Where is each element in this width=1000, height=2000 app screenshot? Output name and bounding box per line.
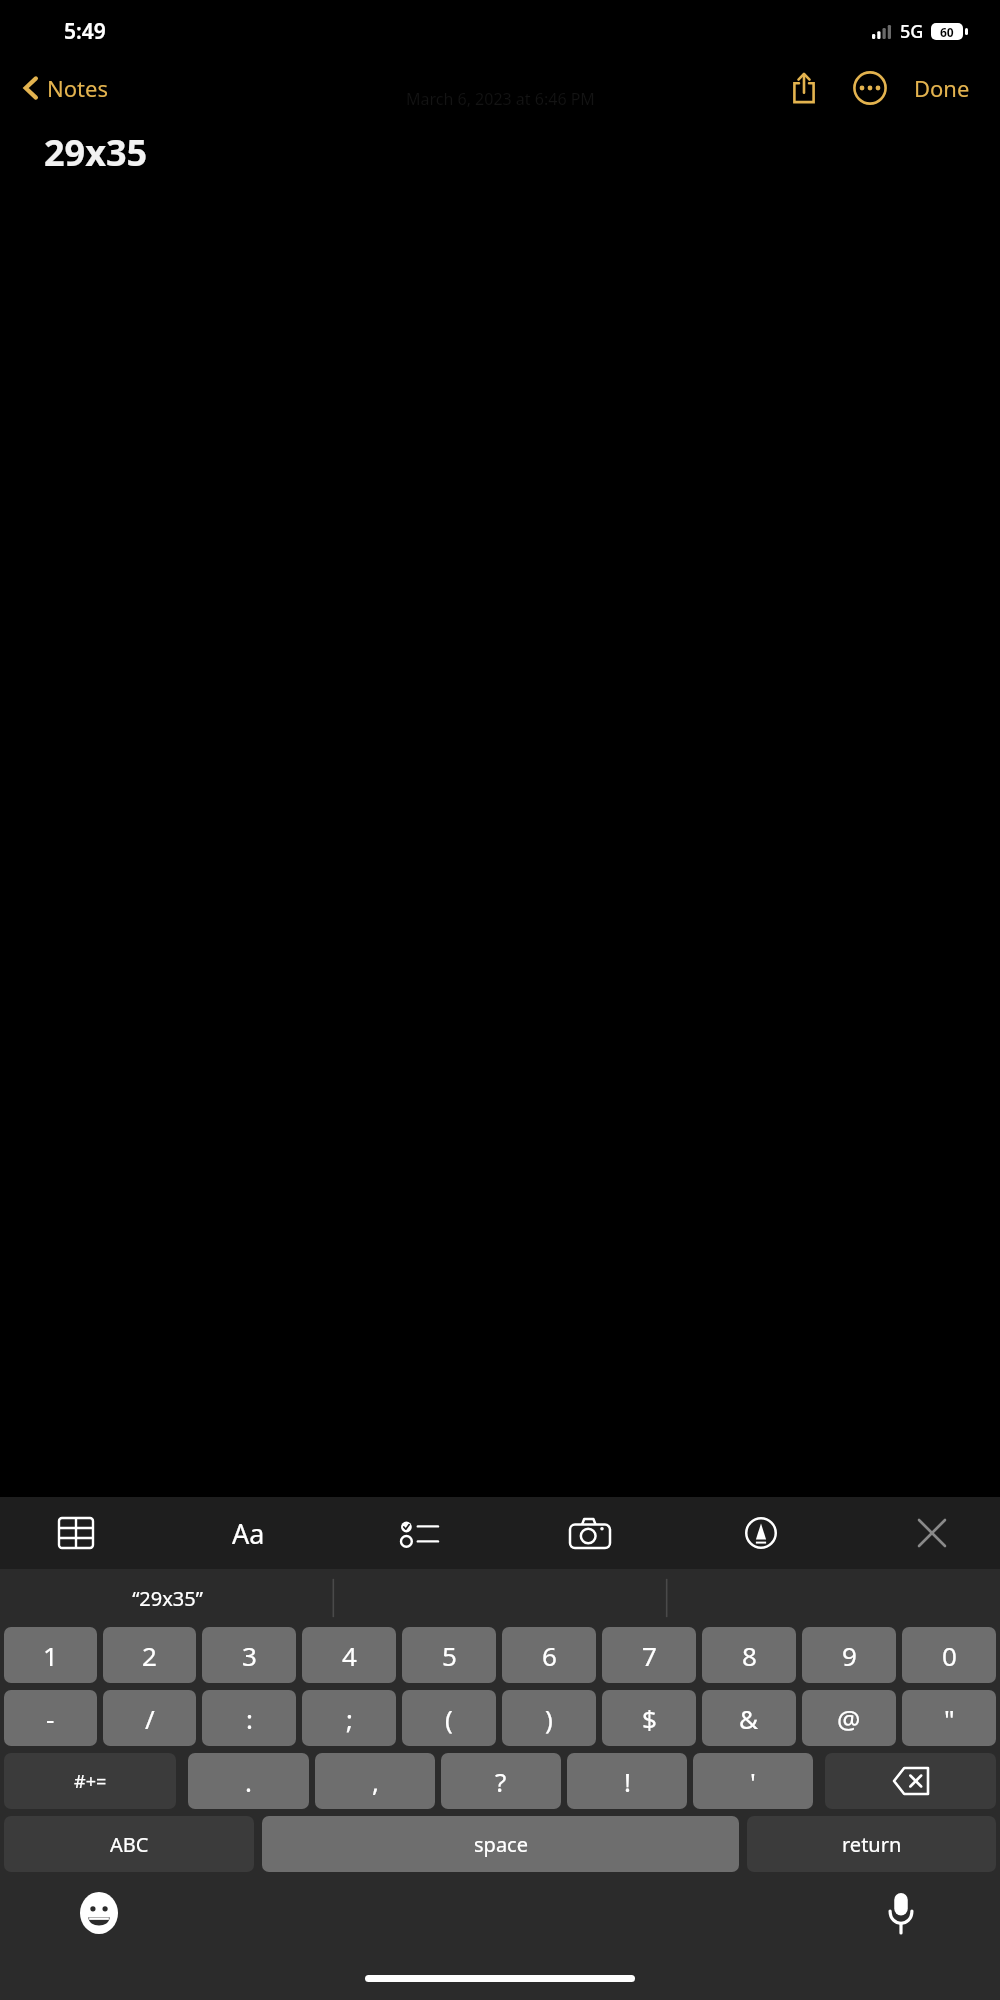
staticText: ; <box>346 1701 353 1736</box>
staticText: ' <box>750 1764 756 1799</box>
button[interactable]: $ <box>602 1690 696 1746</box>
staticText: 4 <box>342 1638 357 1673</box>
button[interactable]: Backspace <box>825 1753 996 1809</box>
button[interactable]: Format <box>220 1505 276 1561</box>
button[interactable]: @ <box>802 1690 896 1746</box>
button[interactable]: space <box>262 1816 739 1872</box>
button[interactable]: “29x35” <box>0 1569 334 1627</box>
staticText: ) <box>545 1701 553 1736</box>
button[interactable]: 1 <box>4 1627 97 1683</box>
staticText: 60 <box>940 24 954 40</box>
button[interactable]: #+= <box>4 1753 176 1809</box>
button[interactable]: & <box>702 1690 796 1746</box>
button[interactable]: Dictation <box>874 1886 928 1940</box>
button[interactable]: Done <box>906 67 978 109</box>
staticText: 6 <box>542 1638 557 1673</box>
button[interactable]: 8 <box>702 1627 796 1683</box>
staticText: 8 <box>742 1638 757 1673</box>
staticText: 0 <box>942 1638 957 1673</box>
staticText: 9 <box>842 1638 857 1673</box>
staticText: return <box>842 1831 902 1858</box>
staticText: 7 <box>642 1638 657 1673</box>
button[interactable]: 2 <box>103 1627 196 1683</box>
button[interactable]: 9 <box>802 1627 896 1683</box>
staticText: 5:49 <box>64 17 106 46</box>
staticText: 29x35 <box>44 128 148 177</box>
staticText: ABC <box>110 1831 149 1858</box>
button[interactable]: : <box>202 1690 296 1746</box>
button[interactable]: Checklist <box>391 1505 447 1561</box>
button[interactable]: ABC <box>4 1816 254 1872</box>
button[interactable]: ! <box>567 1753 687 1809</box>
button[interactable]: 6 <box>502 1627 596 1683</box>
staticText: Notes <box>47 73 108 103</box>
button[interactable]: Share <box>782 66 826 110</box>
button[interactable]: ' <box>693 1753 813 1809</box>
button[interactable]: return <box>747 1816 996 1872</box>
staticText: “29x35” <box>132 1585 203 1612</box>
staticText: : <box>246 1701 253 1736</box>
staticText: @ <box>837 1701 861 1736</box>
button[interactable]: Table <box>48 1505 104 1561</box>
button[interactable]: More options <box>848 66 892 110</box>
staticText: space <box>474 1831 528 1858</box>
button[interactable]: ( <box>402 1690 496 1746</box>
staticText: - <box>46 1701 55 1736</box>
button[interactable]: 3 <box>202 1627 296 1683</box>
staticText: " <box>944 1701 955 1736</box>
staticText: 2 <box>142 1638 157 1673</box>
staticText: Aa <box>232 1515 265 1552</box>
staticText: ? <box>495 1764 507 1799</box>
staticText: $ <box>642 1701 657 1736</box>
button[interactable]: Close keyboard <box>904 1505 960 1561</box>
staticText: ! <box>624 1764 631 1799</box>
staticText: 3 <box>242 1638 257 1673</box>
button[interactable]: 4 <box>302 1627 396 1683</box>
button[interactable]: / <box>103 1690 196 1746</box>
button[interactable]: Notes <box>0 69 120 107</box>
staticText: . <box>245 1764 252 1799</box>
staticText: 5G <box>900 19 924 44</box>
button[interactable]: . <box>188 1753 309 1809</box>
staticText: ( <box>445 1701 453 1736</box>
staticText: 5 <box>442 1638 457 1673</box>
button[interactable]: Camera <box>562 1505 618 1561</box>
button[interactable]: ? <box>441 1753 561 1809</box>
staticText: 1 <box>43 1638 58 1673</box>
button[interactable]: 0 <box>902 1627 996 1683</box>
button[interactable]: 7 <box>602 1627 696 1683</box>
staticText: & <box>739 1701 759 1736</box>
button[interactable]: ; <box>302 1690 396 1746</box>
button[interactable]: - <box>4 1690 97 1746</box>
button[interactable]: " <box>902 1690 996 1746</box>
button[interactable]: 5 <box>402 1627 496 1683</box>
staticText: / <box>145 1701 155 1736</box>
staticText: Done <box>914 73 970 103</box>
staticText: , <box>372 1764 379 1799</box>
button[interactable]: , <box>315 1753 435 1809</box>
button[interactable]: ) <box>502 1690 596 1746</box>
staticText: #+= <box>74 1769 107 1794</box>
button[interactable]: Markup <box>733 1505 789 1561</box>
staticText: March 6, 2023 at 6:46 PM <box>406 88 595 110</box>
button[interactable]: Emoji <box>72 1886 126 1940</box>
